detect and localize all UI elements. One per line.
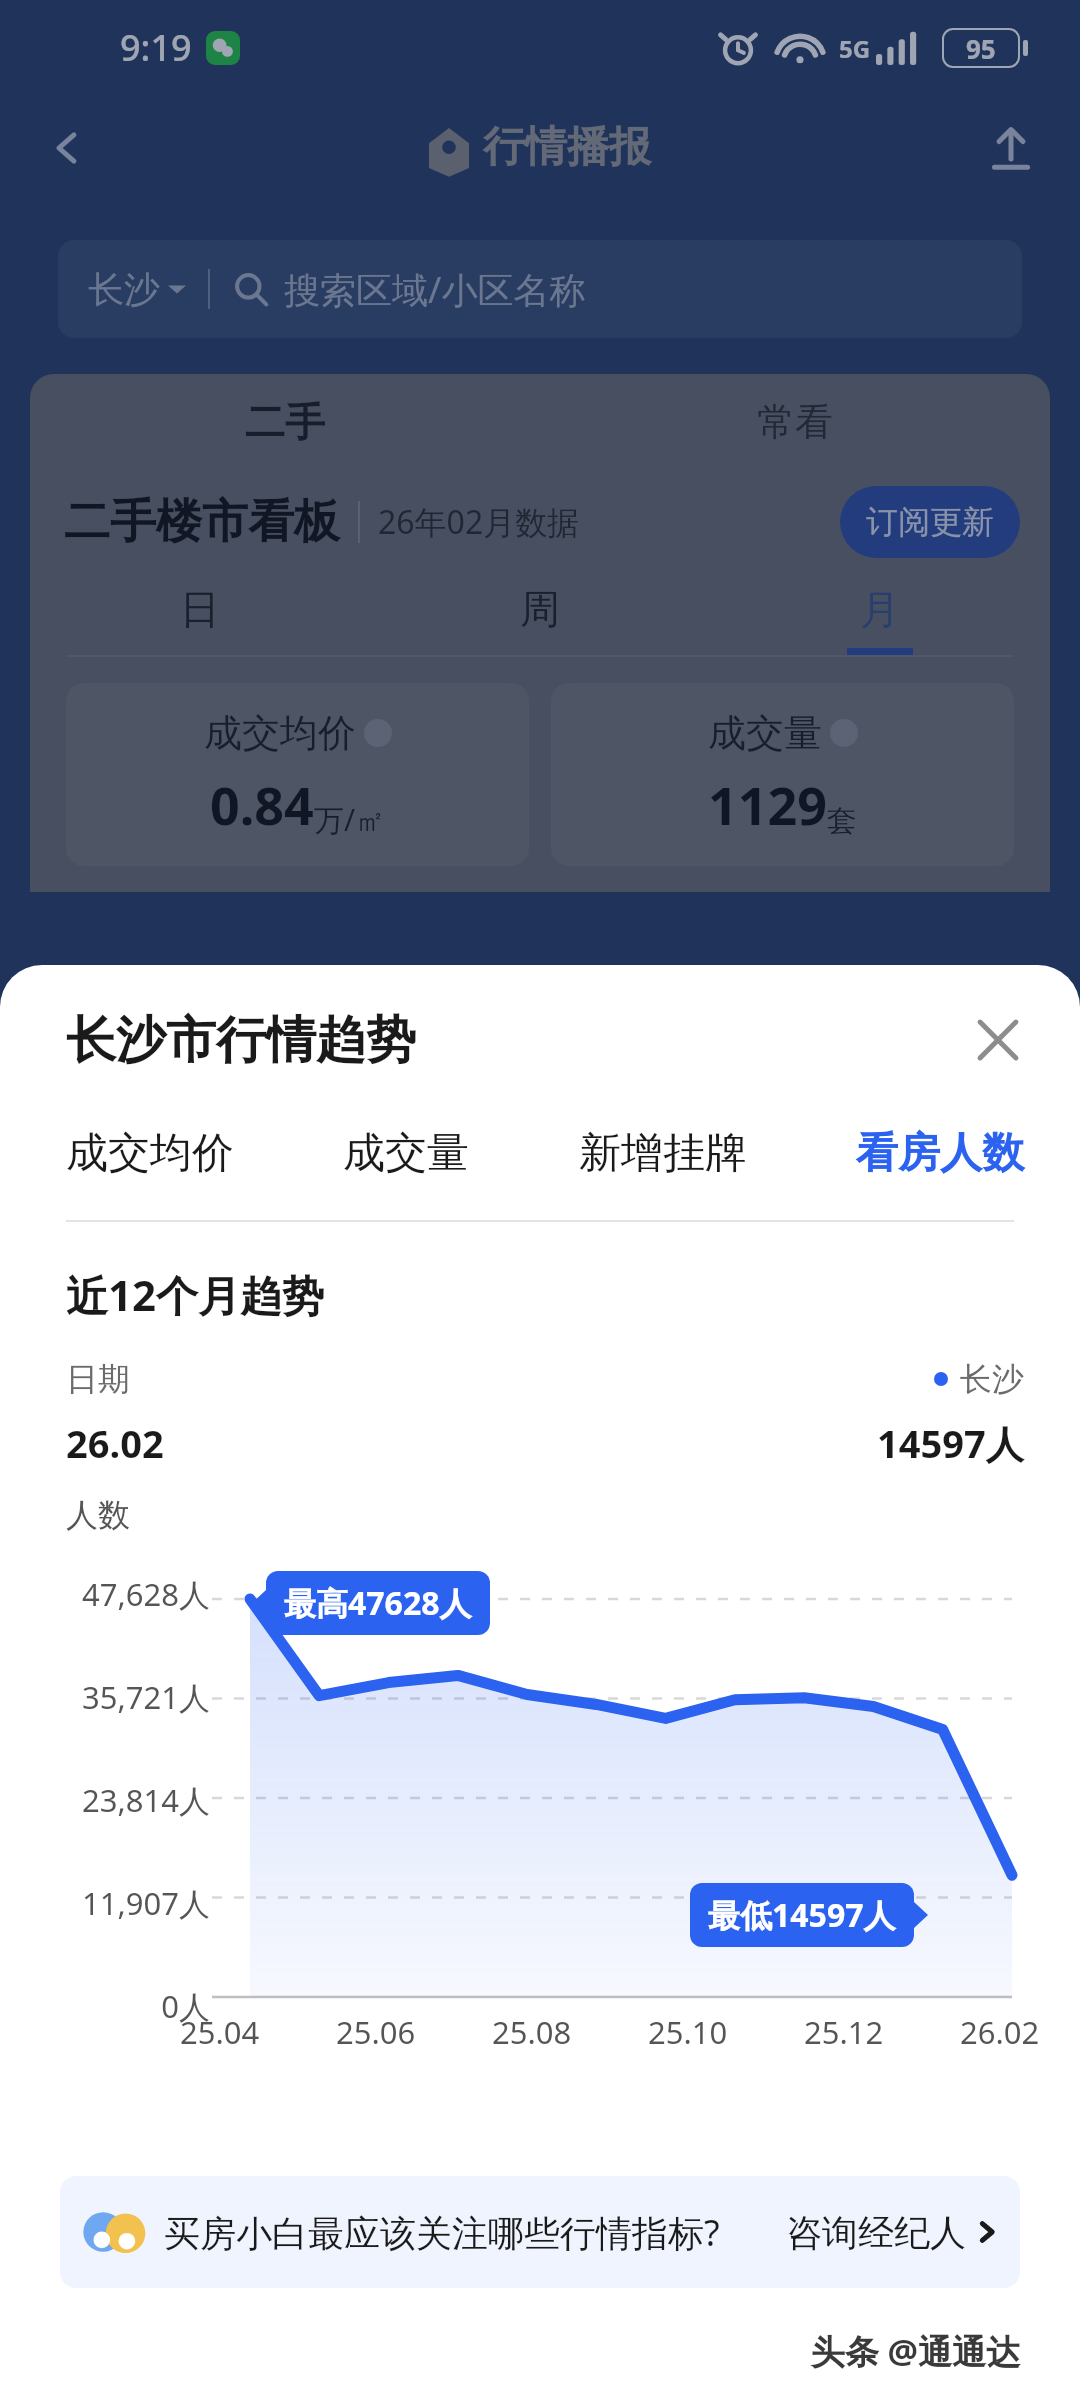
staticText: 买房小白最应该关注哪些行情指标?	[164, 2208, 720, 2257]
staticText: 人数	[66, 1495, 130, 1535]
button[interactable]: 买房小白最应该关注哪些行情指标?	[60, 2176, 1020, 2288]
staticText: 9:19	[120, 23, 192, 72]
staticText: 成交量	[343, 1127, 469, 1180]
staticText: 日期	[66, 1359, 130, 1399]
staticText: 47,628人	[40, 1573, 210, 1615]
staticText: 1129	[708, 769, 827, 840]
staticText: 23,814人	[40, 1779, 210, 1821]
staticText: 最高47628人	[284, 1581, 472, 1625]
staticText: 0.84	[210, 769, 314, 840]
staticText: 近12个月趋势	[66, 1266, 325, 1323]
staticText: 成交均价	[204, 709, 356, 757]
staticText: 月	[860, 584, 900, 634]
staticText: 搜索区域/小区名称	[284, 265, 586, 314]
staticText: 订阅更新	[866, 502, 994, 542]
staticText: 万/㎡	[314, 799, 386, 840]
staticText: 周	[520, 584, 560, 634]
staticText: 25.08	[492, 2011, 572, 2053]
staticText: 常看	[757, 398, 833, 446]
staticText: 25.04	[180, 2011, 260, 2053]
button[interactable]: 二手	[30, 374, 540, 470]
staticText: 头条 @通通达	[0, 2328, 1020, 2374]
staticText: 25.10	[648, 2011, 728, 2053]
staticText: 行情播报	[483, 121, 651, 174]
staticText: 25.06	[336, 2011, 416, 2053]
button[interactable]: 新增挂牌	[579, 1115, 747, 1192]
button[interactable]: 日	[30, 584, 370, 655]
staticText: 35,721人	[40, 1676, 210, 1718]
staticText: 26年02月数据	[378, 500, 580, 544]
staticText: 长沙	[960, 1359, 1024, 1399]
button[interactable]: 看房人数	[856, 1115, 1024, 1192]
staticText: 26.02	[960, 2011, 1040, 2053]
button[interactable]: 成交量	[343, 1115, 469, 1192]
button[interactable]: 长沙	[58, 240, 1022, 338]
staticText: 14597人	[877, 1417, 1024, 1469]
button[interactable]: 常看	[540, 374, 1050, 470]
button[interactable]: 订阅更新	[840, 486, 1020, 558]
staticText: 26.02	[66, 1417, 164, 1469]
staticText: 0人	[40, 1985, 210, 2027]
staticText: 长沙	[88, 267, 160, 312]
staticText: 咨询经纪人	[786, 2210, 966, 2255]
button[interactable]: 成交量	[551, 683, 1014, 866]
staticText: 二手	[245, 397, 325, 447]
button[interactable]: 周	[370, 584, 710, 655]
staticText: 5G	[839, 32, 871, 65]
button[interactable]: 成交均价	[66, 1115, 234, 1192]
staticText: 看房人数	[856, 1127, 1024, 1180]
staticText: 25.12	[804, 2011, 884, 2053]
staticText: 11,907人	[40, 1882, 210, 1924]
staticText: 成交量	[708, 709, 822, 757]
button[interactable]: 月	[710, 584, 1050, 655]
staticText: 成交均价	[66, 1127, 234, 1180]
staticText: 最低14597人	[708, 1893, 896, 1937]
staticText: 二手楼市看板	[64, 493, 340, 551]
staticText: 日	[180, 584, 220, 634]
staticText: 新增挂牌	[579, 1127, 747, 1180]
staticText: 长沙市行情趋势	[66, 1009, 416, 1072]
button[interactable]: 成交均价	[66, 683, 529, 866]
staticText: 套	[827, 802, 857, 840]
button[interactable]: 关闭	[962, 1004, 1034, 1076]
staticText: 95	[966, 31, 996, 66]
